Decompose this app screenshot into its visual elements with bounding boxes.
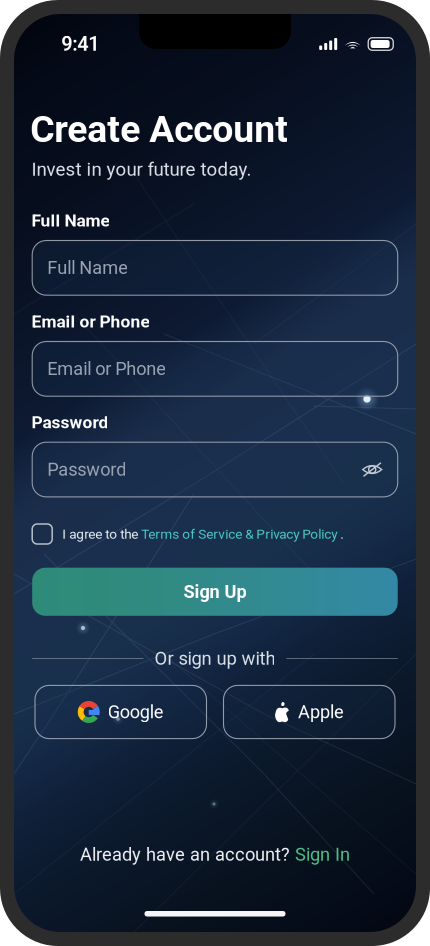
button[interactable]: I agree to the xyxy=(32,524,398,544)
staticText: Or sign up with xyxy=(154,648,275,669)
staticText: Email or Phone xyxy=(47,358,166,379)
button[interactable]: Email or Phone xyxy=(32,341,398,396)
staticText: Password xyxy=(31,412,108,432)
staticText: Google xyxy=(108,701,164,723)
button[interactable]: Sign In xyxy=(295,844,350,865)
button[interactable]: Password xyxy=(32,442,398,497)
staticText: Full Name xyxy=(31,210,109,231)
button[interactable]: Full Name xyxy=(32,240,398,295)
button[interactable]: Apple xyxy=(223,685,395,739)
button[interactable]: Sign Up xyxy=(32,568,398,616)
staticText: Already have an account? xyxy=(80,844,295,865)
staticText: Create Account xyxy=(30,107,288,151)
staticText: Invest in your future today. xyxy=(31,158,251,180)
staticText: Email or Phone xyxy=(31,311,149,332)
staticText: I agree to the xyxy=(62,526,141,542)
staticText: 9:41 xyxy=(61,32,99,56)
staticText: Password xyxy=(47,459,126,480)
staticText: . xyxy=(337,526,344,542)
staticText: Terms of Service & Privacy Policy xyxy=(141,526,337,542)
button[interactable]: Google xyxy=(35,685,206,739)
staticText: Sign Up xyxy=(183,581,246,602)
staticText: Full Name xyxy=(47,257,128,278)
staticText: Apple xyxy=(298,701,344,723)
staticText: Sign In xyxy=(295,844,350,865)
